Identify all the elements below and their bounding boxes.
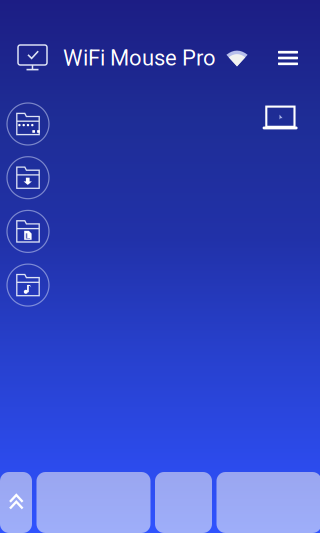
button[interactable]: Media remote <box>216 472 320 533</box>
button[interactable]: Menu <box>278 51 298 65</box>
button[interactable]: Keyboard <box>155 472 212 533</box>
button[interactable]: Music folder <box>7 264 49 306</box>
button[interactable]: Apps folder <box>7 103 49 145</box>
button[interactable]: Computer <box>263 105 298 130</box>
button[interactable]: Touchpad <box>36 472 150 533</box>
button[interactable]: Wi-Fi connection <box>226 49 248 67</box>
button[interactable]: Documents folder <box>7 210 49 252</box>
button[interactable]: Expand controls <box>0 472 32 533</box>
button[interactable]: Connected device <box>18 45 48 71</box>
button[interactable]: Downloads folder <box>7 157 49 199</box>
staticText: WiFi Mouse Pro <box>63 45 216 71</box>
